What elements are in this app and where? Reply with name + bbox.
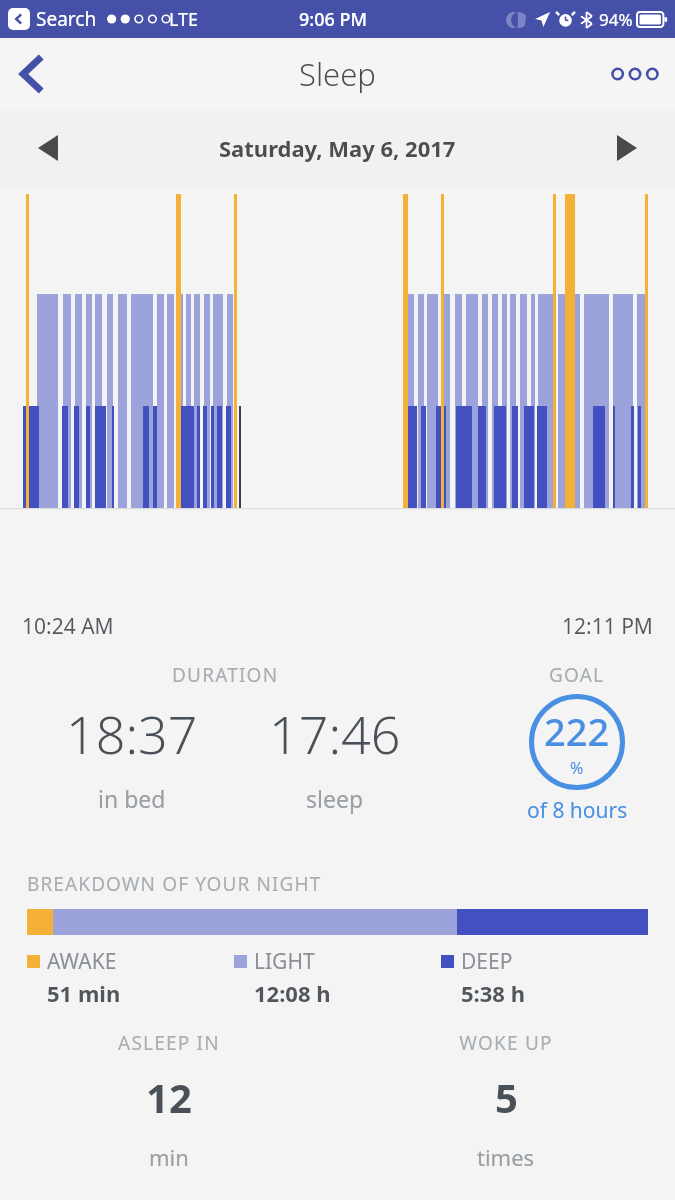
- button[interactable]: Next day: [601, 122, 653, 174]
- staticText: 5: [495, 1070, 518, 1124]
- staticText: 51 min: [47, 978, 121, 1008]
- button[interactable]: ASLEEP IN: [0, 1030, 337, 1172]
- button[interactable]: AWAKE: [27, 947, 234, 1008]
- staticText: of 8 hours: [527, 796, 628, 825]
- staticText: 17:46: [269, 698, 401, 769]
- staticText: LTE: [169, 7, 199, 32]
- staticText: BREAKDOWN OF YOUR NIGHT: [27, 871, 322, 897]
- staticText: 94%: [599, 8, 633, 31]
- staticText: Sleep: [299, 53, 376, 95]
- staticText: WOKE UP: [459, 1030, 553, 1056]
- button[interactable]: 17:46: [245, 698, 425, 814]
- staticText: DEEP: [461, 947, 513, 976]
- staticText: times: [477, 1142, 535, 1172]
- staticText: %: [570, 757, 584, 779]
- staticText: ASLEEP IN: [118, 1030, 220, 1056]
- staticText: GOAL: [549, 662, 605, 688]
- staticText: AWAKE: [47, 947, 117, 976]
- staticText: 9:06 PM: [299, 7, 367, 32]
- staticText: min: [149, 1142, 189, 1172]
- staticText: 18:37: [66, 698, 198, 769]
- staticText: 5:38 h: [461, 978, 525, 1008]
- button[interactable]: DEEP: [441, 947, 648, 1008]
- staticText: sleep: [306, 783, 364, 814]
- button[interactable]: Back: [0, 42, 64, 106]
- button[interactable]: Previous day: [22, 122, 74, 174]
- staticText: 222: [544, 705, 610, 757]
- staticText: LIGHT: [254, 947, 315, 976]
- button[interactable]: More options: [595, 42, 675, 106]
- button[interactable]: 18:37: [42, 698, 222, 814]
- staticText: in bed: [98, 783, 166, 814]
- staticText: 10:24 AM: [22, 612, 114, 641]
- button[interactable]: GOAL: [497, 662, 657, 825]
- staticText: 12:08 h: [254, 978, 331, 1008]
- button[interactable]: LIGHT: [234, 947, 441, 1008]
- button[interactable]: WOKE UP: [337, 1030, 675, 1172]
- staticText: 12:11 PM: [562, 612, 653, 641]
- staticText: DURATION: [172, 662, 279, 688]
- staticText: Saturday, May 6, 2017: [219, 133, 456, 163]
- staticText: Search: [36, 6, 97, 32]
- staticText: 12: [146, 1070, 192, 1124]
